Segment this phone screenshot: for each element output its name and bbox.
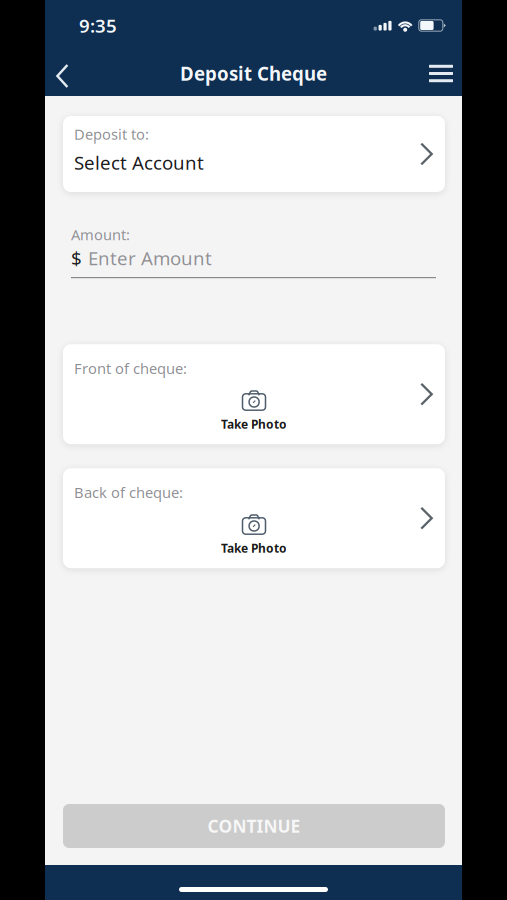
staticText: $ — [71, 246, 82, 270]
button[interactable]: Back — [56, 51, 96, 95]
staticText: Select Account — [74, 150, 204, 175]
staticText: 9:35 — [79, 13, 117, 38]
staticText: Amount: — [71, 225, 130, 244]
button[interactable]: Menu — [415, 51, 453, 95]
staticText: CONTINUE — [207, 814, 300, 837]
staticText: Take Photo — [221, 416, 287, 432]
button[interactable]: Take Photo — [63, 468, 445, 568]
staticText: Take Photo — [221, 540, 287, 556]
button[interactable]: Deposit to: — [63, 116, 445, 192]
staticText: Front of cheque: — [74, 358, 187, 378]
button[interactable]: Take Photo — [63, 344, 445, 444]
staticText: Deposit Cheque — [180, 61, 327, 86]
staticText: Deposit to: — [74, 124, 149, 144]
staticText: Enter Amount — [88, 246, 212, 270]
button[interactable]: CONTINUE — [63, 804, 445, 848]
staticText: Back of cheque: — [74, 482, 183, 502]
